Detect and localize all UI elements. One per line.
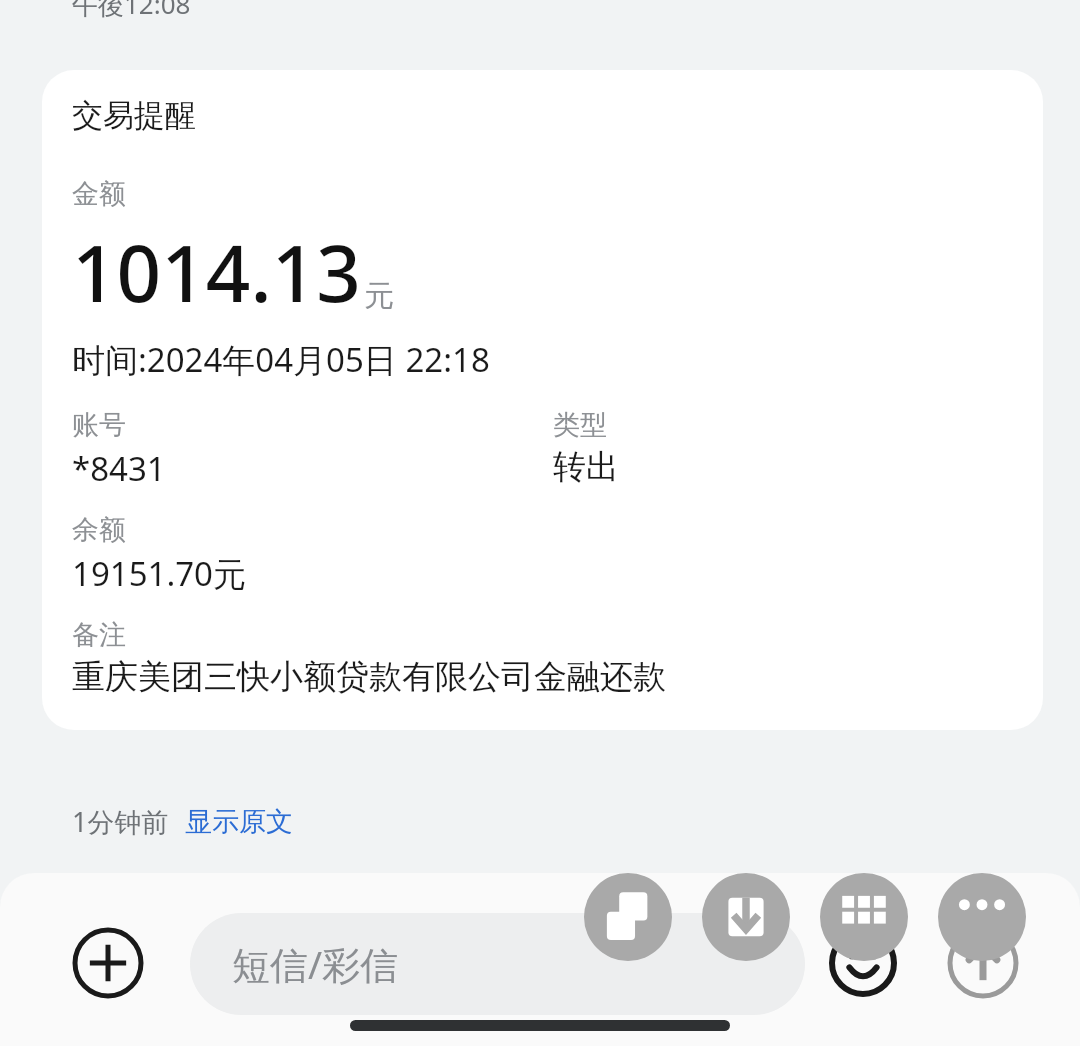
button[interactable]: Send xyxy=(947,927,1019,999)
button[interactable]: Translate xyxy=(584,873,672,961)
staticText: 类型 xyxy=(553,408,607,442)
staticText: 显示原文 xyxy=(185,805,293,839)
staticText: 短信/彩信 xyxy=(232,938,399,990)
staticText: 转出 xyxy=(553,446,619,488)
staticText: *8431 xyxy=(72,446,166,491)
staticText: 重庆美团三快小额贷款有限公司金融还款 xyxy=(72,656,666,698)
button[interactable]: More options xyxy=(938,873,1026,961)
staticText: 1014.13 xyxy=(72,219,361,325)
staticText: 19151.70元 xyxy=(72,551,246,596)
button[interactable]: Apps xyxy=(820,873,908,961)
button[interactable]: 交易提醒 xyxy=(42,70,1043,730)
staticText: 1分钟前 xyxy=(72,803,169,840)
button[interactable]: 显示原文 xyxy=(185,805,293,839)
staticText: 时间:2024年04月05日 22:18 xyxy=(72,337,490,382)
staticText: 午後12:08 xyxy=(72,0,191,22)
button[interactable]: Add attachment xyxy=(72,927,144,999)
staticText: 元 xyxy=(364,277,394,315)
staticText: 备注 xyxy=(72,618,126,652)
staticText: 交易提醒 xyxy=(72,96,196,135)
button[interactable]: Emoji xyxy=(829,929,897,997)
staticText: 账号 xyxy=(72,408,126,442)
button[interactable]: Download xyxy=(702,873,790,961)
staticText: 金额 xyxy=(72,177,126,211)
staticText: 余额 xyxy=(72,513,126,547)
button[interactable]: 短信/彩信 xyxy=(190,913,805,1015)
